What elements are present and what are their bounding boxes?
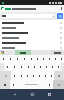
button[interactable] (0, 80, 10, 89)
button[interactable]: Site information (0, 5, 64, 12)
button[interactable] (51, 50, 63, 55)
button[interactable] (36, 71, 42, 80)
button[interactable]: Home (29, 91, 36, 98)
button[interactable]: Insert suggestion (0, 25, 64, 30)
button[interactable] (48, 71, 54, 80)
button[interactable] (24, 71, 30, 80)
button[interactable]: Search (57, 13, 63, 19)
button[interactable] (46, 80, 53, 89)
button[interactable] (18, 63, 25, 71)
button[interactable]: Backspace (54, 71, 64, 80)
button[interactable] (42, 71, 48, 80)
button[interactable] (30, 71, 36, 80)
button[interactable] (11, 71, 18, 80)
other: Insert suggestion (60, 37, 62, 39)
button[interactable] (34, 55, 40, 63)
button[interactable] (21, 55, 28, 63)
button[interactable] (28, 55, 34, 63)
button[interactable]: Enter (53, 80, 64, 89)
other: Insert suggestion (60, 42, 62, 44)
button[interactable]: Google (1, 51, 4, 54)
other: Insert suggestion (60, 27, 62, 29)
button[interactable]: Insert suggestion (0, 30, 64, 35)
button[interactable]: Insert suggestion (0, 20, 64, 25)
button[interactable]: Shift (0, 71, 11, 80)
button[interactable]: Insert suggestion (0, 40, 64, 45)
button[interactable] (11, 63, 18, 71)
other: Clear (52, 15, 55, 18)
button[interactable] (37, 63, 43, 71)
button[interactable]: Insert suggestion (0, 45, 64, 50)
button[interactable]: Clear (1, 13, 56, 19)
button[interactable]: More options (60, 6, 63, 11)
button[interactable] (15, 50, 31, 55)
button[interactable]: Insert suggestion (0, 35, 64, 40)
button[interactable] (14, 55, 21, 63)
button[interactable] (46, 55, 52, 63)
button[interactable]: Recent apps (46, 91, 53, 98)
button[interactable] (55, 63, 61, 71)
button[interactable] (31, 63, 37, 71)
button[interactable] (4, 63, 11, 71)
other: Insert suggestion (60, 47, 62, 49)
button[interactable] (18, 71, 24, 80)
button[interactable] (40, 55, 46, 63)
button[interactable] (7, 55, 14, 63)
button[interactable] (52, 55, 58, 63)
other: Site information (1, 7, 4, 10)
other: Insert suggestion (60, 22, 62, 24)
button[interactable] (0, 55, 7, 63)
button[interactable]: Back (11, 91, 18, 98)
button[interactable] (58, 55, 64, 63)
other: Insert suggestion (60, 32, 62, 34)
button[interactable] (43, 63, 49, 71)
button[interactable]: Space (17, 80, 46, 89)
button[interactable] (25, 63, 31, 71)
button[interactable] (49, 63, 55, 71)
button[interactable] (10, 80, 17, 89)
